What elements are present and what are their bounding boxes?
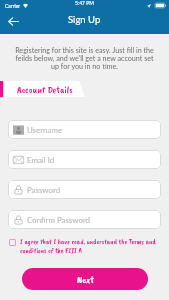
staticText: Sign Up: [68, 14, 101, 25]
button[interactable]: Account Details: [0, 81, 169, 97]
button[interactable]: Next: [22, 268, 148, 290]
staticText: Carrier: [5, 3, 21, 9]
button[interactable]: Confirm Password: [8, 210, 161, 229]
button[interactable]: I agree that I have read, understand the…: [9, 237, 158, 255]
button[interactable]: Email Id: [8, 150, 161, 169]
button[interactable]: Password: [8, 180, 161, 199]
staticText: Password: [27, 185, 61, 194]
staticText: Email Id: [27, 155, 55, 164]
staticText: I agree that I have read, understand the…: [20, 237, 158, 255]
button[interactable]: Back: [3, 11, 23, 31]
staticText: Username: [27, 125, 63, 134]
staticText: 5:47 PM: [75, 0, 94, 6]
staticText: Account Details: [17, 83, 73, 96]
staticText: Registering for this site is easy. Just …: [12, 46, 157, 70]
staticText: Next: [77, 273, 94, 286]
staticText: Confirm Password: [27, 215, 91, 224]
button[interactable]: Username: [8, 120, 161, 139]
